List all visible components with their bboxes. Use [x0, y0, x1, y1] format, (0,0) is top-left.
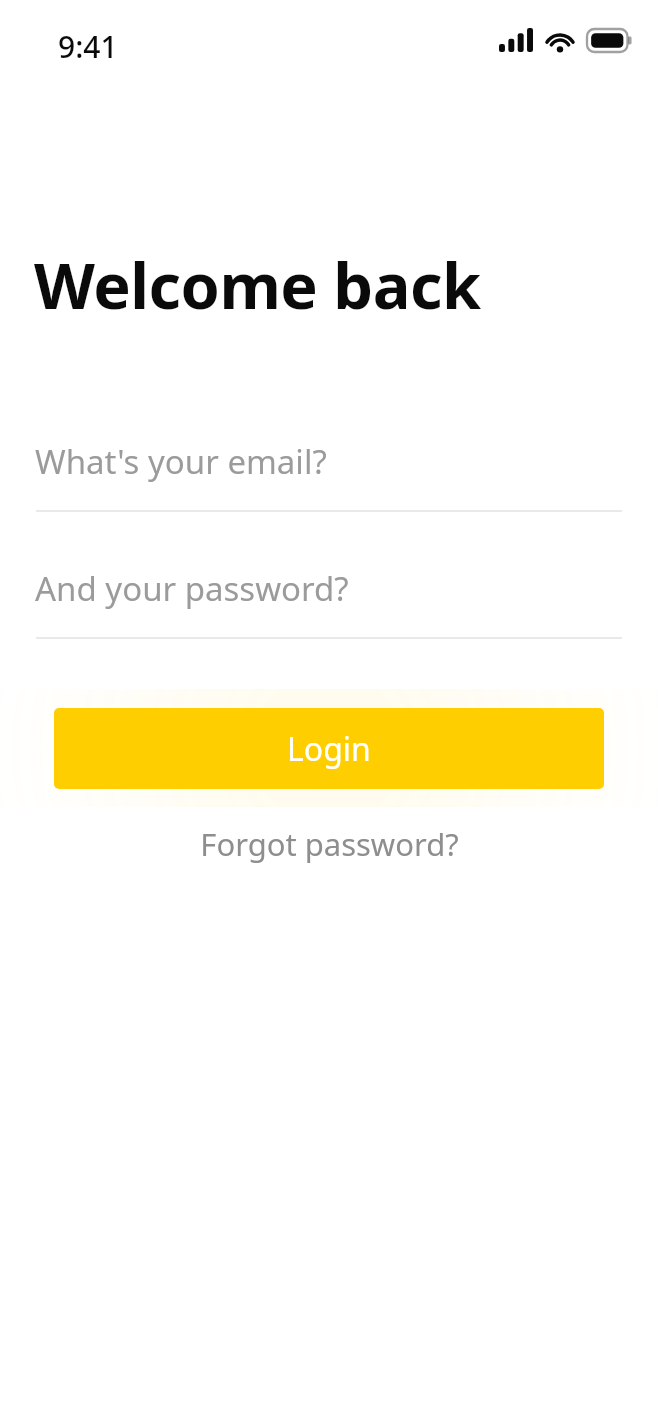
staticText: Login: [287, 727, 371, 771]
staticText: What's your email?: [35, 439, 327, 484]
button[interactable]: Forgot password?: [190, 817, 469, 871]
staticText: Welcome back: [34, 242, 481, 328]
other: Wi-Fi: [544, 28, 576, 52]
button[interactable]: Login: [54, 708, 604, 789]
button[interactable]: What's your email?: [0, 432, 658, 512]
staticText: 9:41: [58, 26, 118, 67]
staticText: Forgot password?: [200, 823, 459, 865]
other: Cellular signal: [499, 28, 533, 52]
staticText: And your password?: [35, 566, 349, 611]
other: Battery: [587, 29, 632, 52]
button[interactable]: And your password?: [0, 559, 658, 639]
